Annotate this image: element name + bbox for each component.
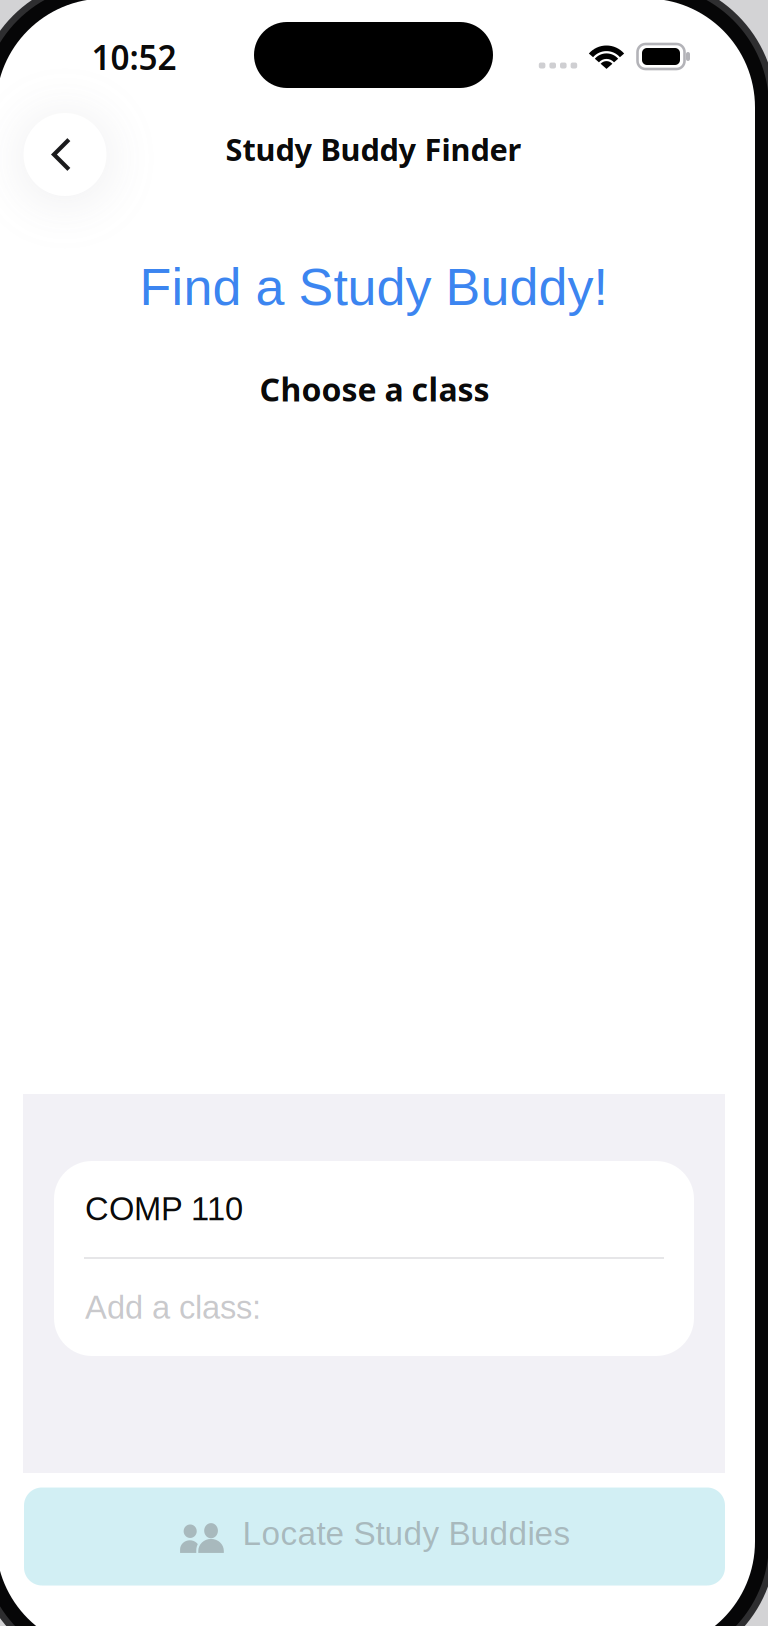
staticText: Find a Study Buddy! [139, 258, 607, 316]
staticText: Study Buddy Finder [225, 128, 521, 170]
staticText: Locate Study Buddies [242, 1515, 570, 1552]
button[interactable]: Back [13, 102, 117, 206]
button[interactable]: Add a class: [54, 1259, 694, 1356]
button[interactable]: Locate Study Buddies [24, 1487, 725, 1585]
staticText: COMP 110 [85, 1191, 243, 1227]
button[interactable]: COMP 110 [54, 1161, 694, 1257]
staticText: 10:52 [91, 34, 176, 80]
staticText: Choose a class [259, 367, 489, 411]
staticText: Add a class: [85, 1289, 261, 1326]
